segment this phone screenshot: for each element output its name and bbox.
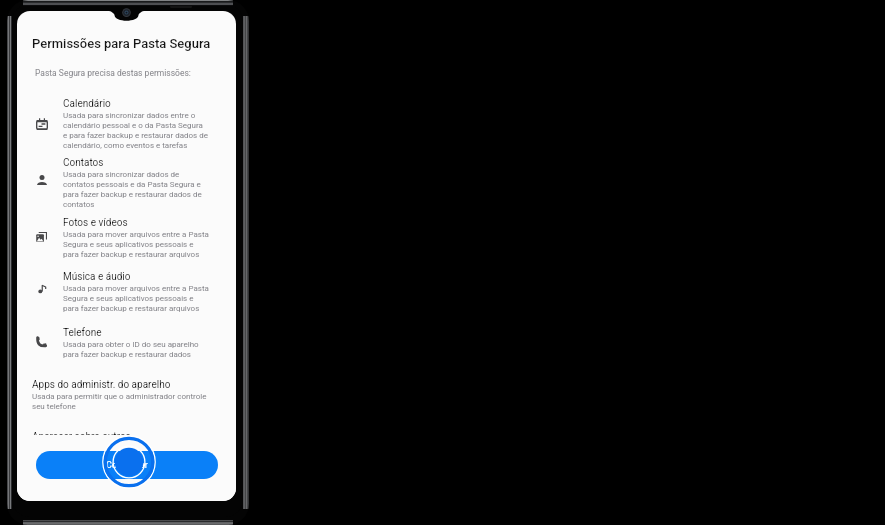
button[interactable]: Aparecer sobre outros bbox=[32, 431, 208, 437]
staticText: Pasta Segura precisa destas permissões: bbox=[35, 68, 191, 78]
button[interactable]: Fotos e vídeos bbox=[32, 217, 222, 269]
button[interactable]: Música e áudio bbox=[32, 271, 222, 323]
staticText: Usada para mover arquivos entre a Pasta … bbox=[63, 229, 209, 259]
button[interactable]: Apps do administr. do aparelho bbox=[32, 379, 208, 411]
other: Touch indicator bbox=[101, 434, 157, 490]
staticText: Contatos bbox=[63, 157, 104, 169]
staticText: Usada para obter o ID do seu aparelho pa… bbox=[63, 339, 209, 359]
button[interactable]: Contatos bbox=[32, 157, 222, 209]
staticText: Usada para mover arquivos entre a Pasta … bbox=[63, 283, 209, 313]
staticText: Concordar bbox=[106, 460, 148, 471]
staticText: Usada para sincronizar dados de contatos… bbox=[63, 169, 209, 209]
staticText: Fotos e vídeos bbox=[63, 217, 128, 229]
button[interactable]: Calendário bbox=[32, 98, 222, 150]
staticText: Música e áudio bbox=[63, 271, 131, 283]
staticText: Usada para sincronizar dados entre o cal… bbox=[63, 110, 209, 150]
button[interactable]: Telefone bbox=[32, 327, 222, 379]
staticText: Calendário bbox=[63, 98, 111, 110]
staticText: Permissões para Pasta Segura bbox=[32, 36, 211, 51]
staticText: Apps do administr. do aparelho bbox=[32, 379, 171, 391]
button[interactable]: Concordar bbox=[36, 451, 218, 479]
staticText: Telefone bbox=[63, 327, 102, 339]
staticText: Aparecer sobre outros bbox=[32, 431, 131, 437]
staticText: Usada para permitir que o administrador … bbox=[32, 391, 208, 411]
